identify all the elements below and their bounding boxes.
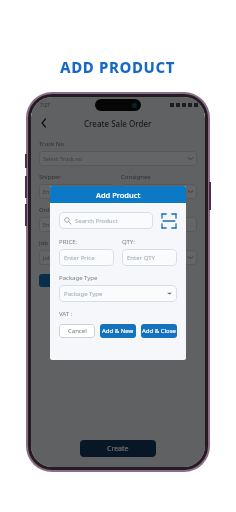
staticText: Package Type: [59, 274, 98, 282]
button[interactable]: P: [39, 274, 65, 287]
staticText: Enter Price: [64, 254, 95, 262]
button[interactable]: Scan barcode: [161, 213, 177, 229]
staticText: Shipper: [39, 173, 61, 181]
staticText: Create Sale Order: [84, 118, 152, 129]
staticText: Add & New: [102, 327, 134, 335]
staticText: Add & Close: [142, 327, 176, 335]
staticText: Job Type: [39, 239, 63, 247]
staticText: Order No: [39, 206, 66, 214]
staticText: ADD PRODUCT: [60, 57, 176, 77]
button[interactable]: Add & Close: [141, 324, 177, 338]
button[interactable]: Enter QTY: [122, 249, 177, 266]
staticText: Add Product: [96, 190, 141, 200]
button[interactable]: Enter: [39, 184, 114, 199]
button[interactable]: Enter Price: [59, 249, 114, 266]
staticText: 7:27: [40, 102, 50, 109]
button[interactable]: Back: [37, 116, 51, 130]
button[interactable]: Create: [80, 440, 156, 457]
staticText: Enter: [43, 188, 57, 195]
staticText: Consignee: [121, 173, 151, 181]
button[interactable]: Enter: [39, 217, 197, 232]
button[interactable]: (OLD-DO NOT USE)PK: [121, 184, 197, 199]
button[interactable]: Package Type: [59, 285, 177, 302]
staticText: PRICE:: [59, 238, 78, 246]
staticText: Cancel: [68, 327, 87, 335]
button[interactable]: Add & New: [100, 324, 136, 338]
staticText: Enter QTY: [127, 254, 155, 262]
button[interactable]: Select Truck no: [39, 151, 197, 166]
button[interactable]: Job: [39, 250, 197, 265]
staticText: (OLD-DO NOT USE)PK: [125, 188, 181, 195]
button[interactable]: Cancel: [59, 324, 95, 338]
staticText: Select Truck no: [43, 155, 82, 162]
button[interactable]: Search Product: [59, 212, 153, 229]
staticText: Search Product: [75, 217, 118, 225]
staticText: Job: [43, 254, 52, 261]
staticText: Create: [107, 444, 129, 454]
staticText: QTY:: [122, 238, 135, 246]
staticText: Truck No: [39, 140, 65, 148]
staticText: VAT :: [59, 310, 73, 318]
staticText: Package Type: [64, 290, 103, 298]
staticText: Enter: [43, 221, 57, 228]
